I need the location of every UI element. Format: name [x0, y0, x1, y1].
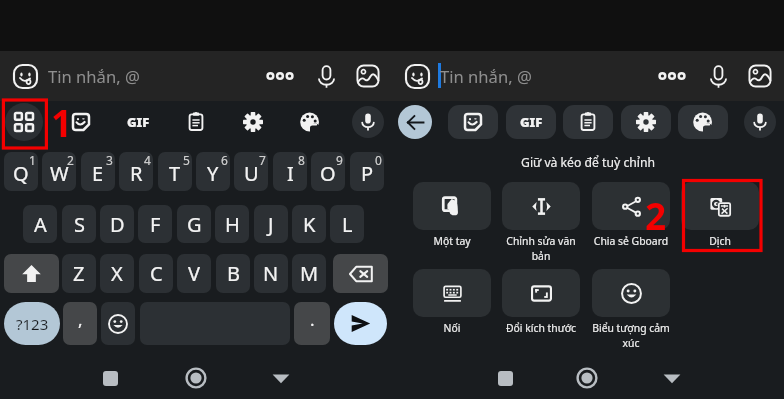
staticText: Chỉnh sửa văn bản: [496, 234, 586, 263]
button[interactable]: Recent apps: [491, 364, 519, 392]
staticText: .: [310, 308, 315, 331]
button[interactable]: More options: [264, 60, 296, 92]
button[interactable]: G: [177, 205, 211, 243]
staticText: B: [227, 260, 240, 287]
button[interactable]: Q: [4, 152, 38, 191]
button[interactable]: H: [215, 205, 249, 243]
staticText: GIF: [520, 113, 543, 131]
button[interactable]: D: [100, 205, 134, 243]
button[interactable]: GIF: [506, 105, 556, 139]
button[interactable]: Voice typing: [744, 106, 776, 138]
button[interactable]: C: [139, 254, 173, 293]
button[interactable]: T: [158, 152, 192, 191]
button[interactable]: Voice input: [702, 60, 734, 92]
button[interactable]: W: [42, 152, 76, 191]
button[interactable]: Back: [658, 364, 686, 392]
button[interactable]: Send: [334, 302, 387, 345]
button[interactable]: Themes: [298, 110, 322, 134]
button[interactable]: Voice typing: [352, 106, 384, 138]
staticText: J: [268, 211, 274, 238]
staticText: Q: [13, 160, 29, 187]
staticText: E: [92, 160, 104, 187]
button[interactable]: V: [177, 254, 211, 293]
staticText: Một tay: [407, 234, 497, 248]
staticText: F: [150, 211, 161, 238]
button[interactable]: X: [100, 254, 134, 293]
button[interactable]: Period: [294, 302, 330, 345]
button[interactable]: A: [23, 205, 57, 243]
button[interactable]: Một tay: [407, 182, 497, 262]
button[interactable]: Nối: [407, 269, 497, 349]
button[interactable]: J: [254, 205, 288, 243]
staticText: K: [303, 211, 316, 238]
button[interactable]: Back: [267, 364, 295, 392]
button[interactable]: Back: [398, 105, 432, 139]
staticText: 7: [259, 152, 266, 168]
staticText: 2: [67, 152, 74, 168]
button[interactable]: B: [216, 254, 250, 293]
button[interactable]: Shift: [4, 254, 59, 293]
staticText: Z: [73, 260, 85, 287]
button[interactable]: E: [81, 152, 115, 191]
button[interactable]: Đổi kích thước: [496, 269, 586, 349]
button[interactable]: Y: [196, 152, 230, 191]
button[interactable]: Home: [573, 364, 601, 392]
button[interactable]: K: [292, 205, 326, 243]
staticText: 9: [336, 152, 343, 168]
button[interactable]: Emoji: [101, 302, 135, 345]
button[interactable]: F: [138, 205, 172, 243]
button[interactable]: Themes: [678, 105, 728, 139]
button[interactable]: More options: [656, 60, 688, 92]
staticText: ,: [78, 308, 83, 331]
button[interactable]: Emoji: [10, 61, 40, 91]
staticText: Chia sẻ Gboard: [586, 234, 676, 248]
button[interactable]: P: [350, 152, 384, 191]
button[interactable]: ?123: [4, 302, 60, 345]
button[interactable]: Stickers: [448, 105, 498, 139]
button[interactable]: Gallery: [744, 60, 776, 92]
staticText: Đổi kích thước: [496, 321, 586, 335]
staticText: T: [169, 160, 181, 187]
button[interactable]: I: [273, 152, 307, 191]
button[interactable]: Home: [182, 364, 210, 392]
button[interactable]: U: [234, 152, 268, 191]
button[interactable]: Settings: [621, 105, 671, 139]
staticText: 5: [183, 152, 190, 168]
button[interactable]: M: [292, 254, 326, 293]
staticText: 2: [645, 190, 667, 240]
button[interactable]: GIF: [122, 110, 154, 134]
staticText: L: [342, 211, 353, 238]
button[interactable]: All tools: [5, 103, 43, 141]
staticText: 1: [51, 97, 73, 144]
button[interactable]: Stickers: [69, 110, 93, 134]
button[interactable]: Gallery: [352, 60, 384, 92]
button[interactable]: Clipboard: [563, 105, 613, 139]
button[interactable]: Clipboard: [184, 110, 208, 134]
staticText: N: [263, 260, 279, 287]
button[interactable]: Emoji: [402, 61, 432, 91]
button[interactable]: Voice input: [310, 60, 342, 92]
button[interactable]: Chỉnh sửa văn bản: [496, 182, 586, 262]
button[interactable]: Comma: [63, 302, 97, 345]
button[interactable]: Biểu tượng cảm xúc: [586, 269, 676, 349]
button[interactable]: Backspace: [333, 254, 388, 293]
staticText: 1: [29, 152, 36, 168]
button[interactable]: N: [254, 254, 288, 293]
staticText: Biểu tượng cảm xúc: [586, 321, 676, 350]
button[interactable]: O: [311, 152, 345, 191]
staticText: A: [34, 211, 47, 238]
button[interactable]: Settings: [241, 110, 265, 134]
staticText: Y: [207, 160, 219, 187]
button[interactable]: Recent apps: [96, 364, 124, 392]
staticText: C: [150, 260, 163, 287]
button[interactable]: Dịch: [675, 182, 765, 262]
button[interactable]: L: [330, 205, 364, 243]
button[interactable]: Z: [62, 254, 96, 293]
button[interactable]: S: [62, 205, 96, 243]
button[interactable]: Chia sẻ Gboard: [586, 182, 676, 262]
staticText: P: [361, 160, 374, 187]
staticText: GIF: [127, 113, 150, 131]
button[interactable]: R: [119, 152, 153, 191]
staticText: ?123: [16, 314, 49, 334]
